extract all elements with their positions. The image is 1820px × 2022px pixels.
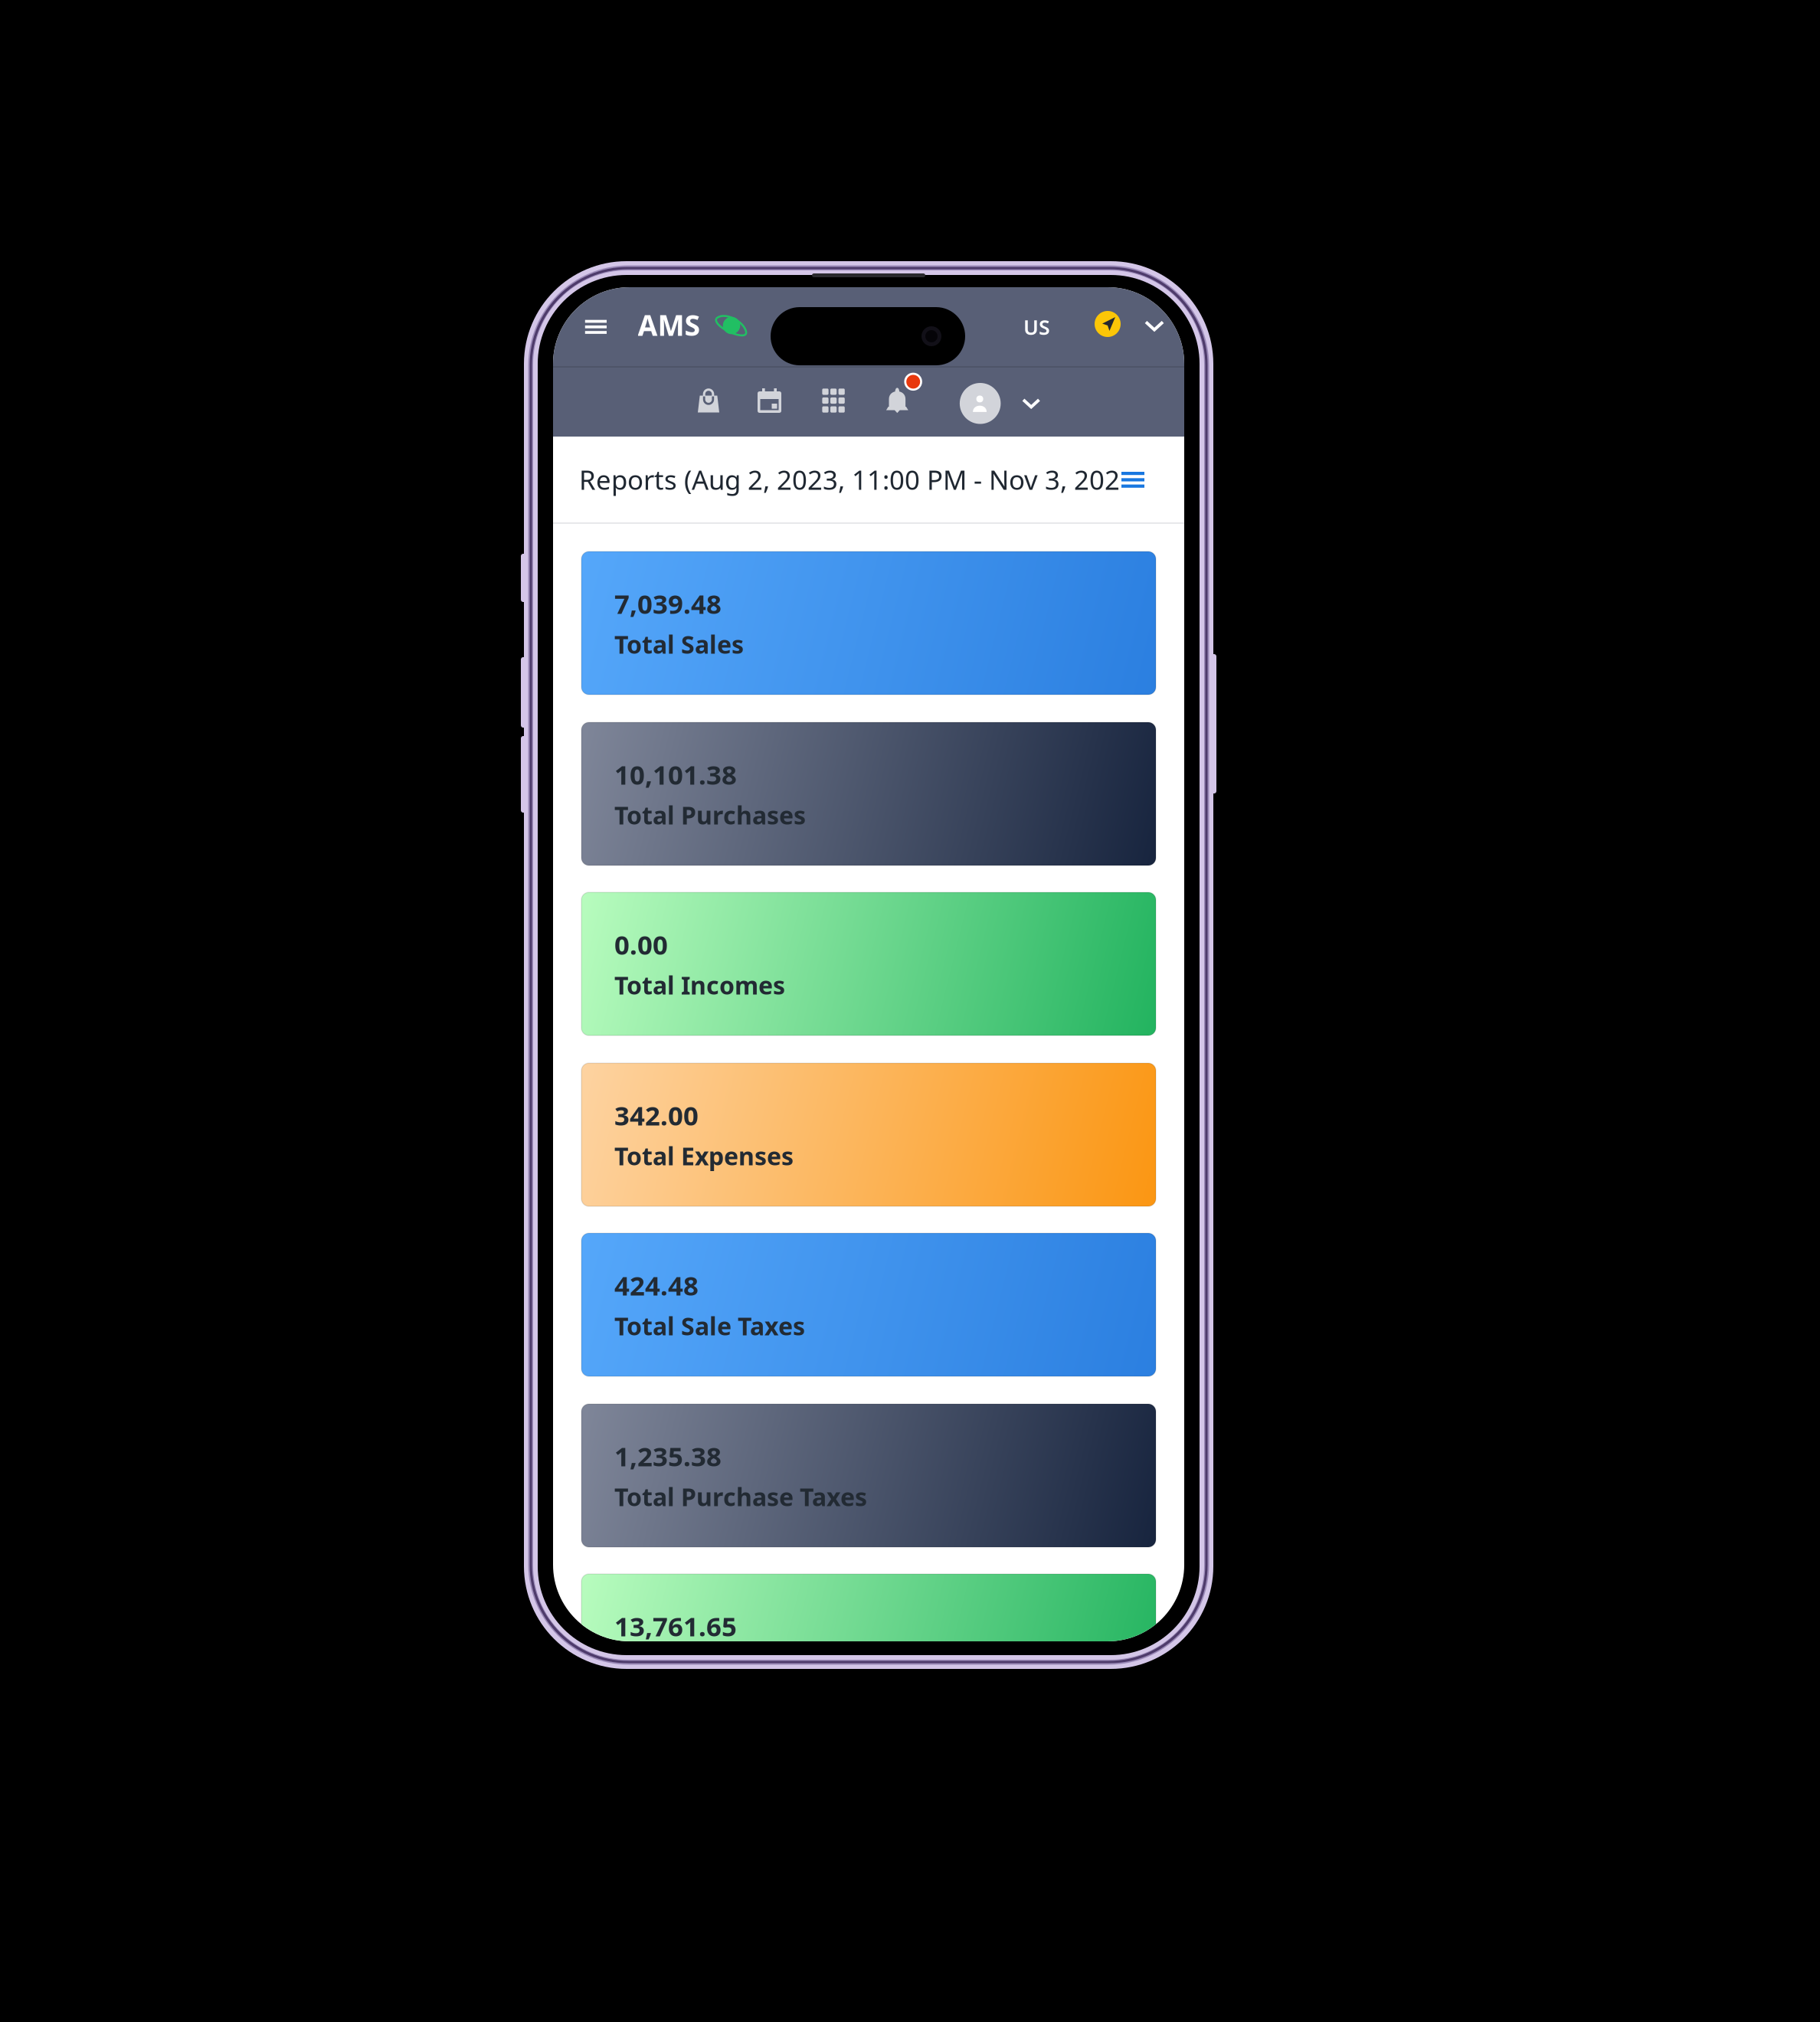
- staticText: Reports (Aug 2, 2023, 11:00 PM - Nov 3, …: [579, 462, 1120, 497]
- button[interactable]: 7,039.48: [581, 551, 1156, 695]
- staticText: Total Expenses: [614, 1140, 794, 1172]
- staticText: Total Incomes: [614, 969, 785, 1001]
- button[interactable]: Menu: [585, 320, 607, 334]
- staticText: 342.00: [614, 1098, 699, 1133]
- staticText: Total Sale Taxes: [614, 1310, 805, 1342]
- button[interactable]: Report options: [1121, 472, 1144, 488]
- staticText: 7,039.48: [614, 586, 722, 621]
- button[interactable]: 1,235.38: [581, 1404, 1156, 1547]
- button[interactable]: Notifications: [886, 388, 909, 414]
- staticText: Total Purchases: [614, 799, 806, 831]
- button[interactable]: 10,101.38: [581, 722, 1156, 865]
- button[interactable]: 13,761.65: [581, 1574, 1156, 1717]
- staticText: Total Sales: [614, 628, 744, 660]
- button[interactable]: More: [1146, 322, 1163, 330]
- staticText: US: [1023, 313, 1050, 341]
- button[interactable]: 342.00: [581, 1063, 1156, 1206]
- button[interactable]: Account: [960, 383, 1001, 424]
- button[interactable]: Account menu: [1023, 400, 1039, 407]
- staticText: 10,101.38: [614, 757, 737, 792]
- button[interactable]: Location: [1095, 311, 1121, 337]
- button[interactable]: 0.00: [581, 892, 1156, 1036]
- staticText: AMS: [638, 306, 701, 344]
- staticText: 1,235.38: [614, 1438, 722, 1474]
- staticText: 424.48: [614, 1268, 699, 1303]
- staticText: 0.00: [614, 927, 668, 962]
- button[interactable]: Shop: [697, 388, 720, 413]
- button[interactable]: Apps: [822, 389, 845, 413]
- button[interactable]: 424.48: [581, 1233, 1156, 1376]
- staticText: Total Purchase Taxes: [614, 1480, 867, 1513]
- staticText: 13,761.65: [614, 1608, 737, 1644]
- button[interactable]: Calendar: [758, 388, 781, 413]
